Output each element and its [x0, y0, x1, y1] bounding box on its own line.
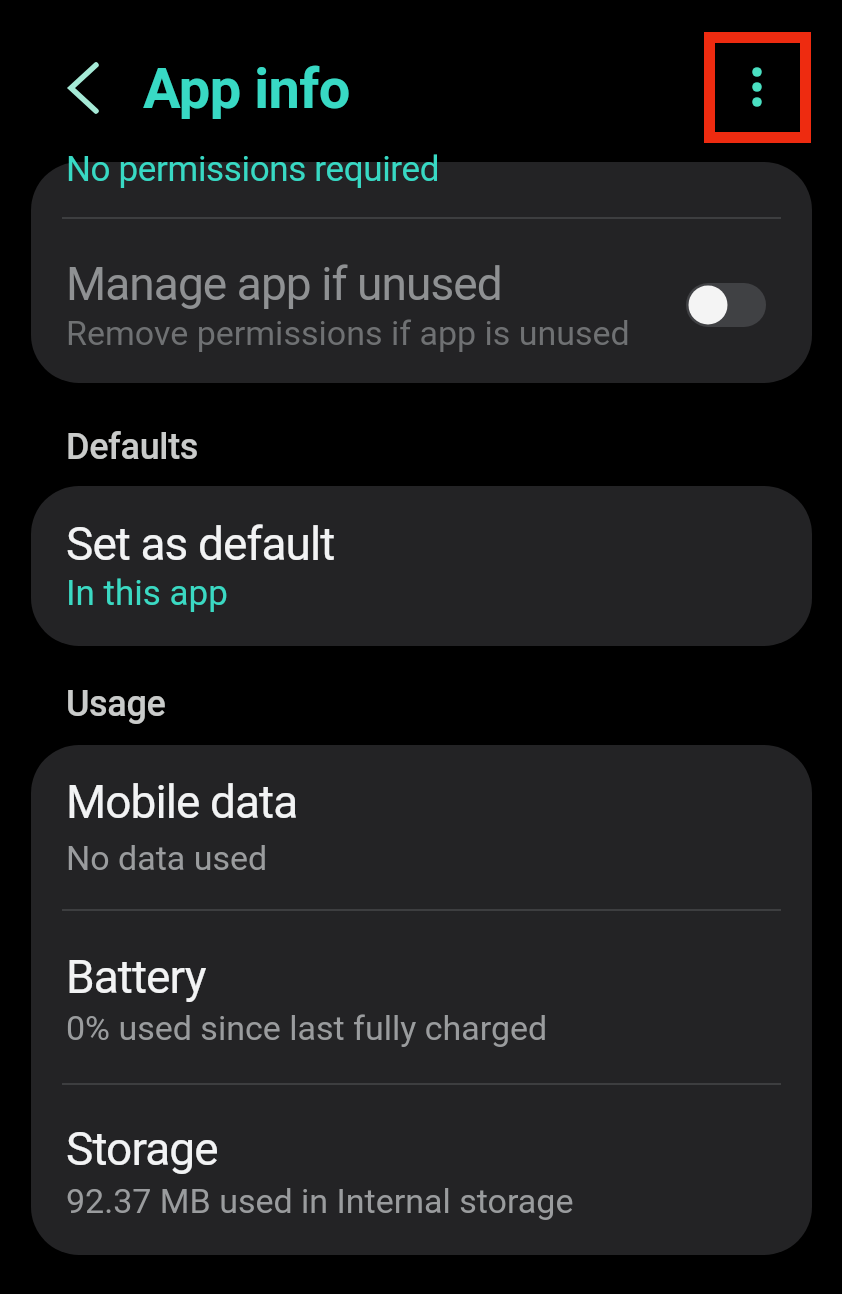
staticText: Storage — [66, 1122, 218, 1176]
staticText: Manage app if unused — [66, 257, 502, 311]
button[interactable] — [31, 911, 812, 1083]
button[interactable] — [31, 486, 812, 646]
button[interactable] — [56, 60, 112, 116]
button[interactable] — [31, 745, 812, 910]
staticText: Remove permissions if app is unused — [66, 313, 630, 353]
staticText: Battery — [66, 950, 206, 1004]
staticText: No data used — [66, 838, 268, 878]
staticText: Set as default — [66, 517, 335, 571]
staticText: Defaults — [66, 426, 199, 468]
button[interactable] — [31, 1085, 812, 1255]
staticText: 92.37 MB used in Internal storage — [66, 1181, 574, 1221]
staticText: No permissions required — [66, 149, 440, 190]
staticText: App info — [143, 56, 350, 122]
button[interactable] — [686, 283, 766, 327]
staticText: Usage — [66, 683, 166, 725]
staticText: 0% used since last fully charged — [66, 1008, 548, 1048]
staticText: In this app — [66, 573, 228, 614]
button[interactable] — [31, 162, 812, 383]
staticText: Mobile data — [66, 775, 298, 829]
button[interactable] — [715, 45, 800, 130]
